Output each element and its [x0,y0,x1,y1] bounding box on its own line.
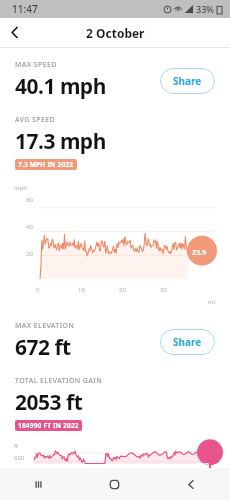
staticText: Share [173,335,202,349]
staticText: 11:47 [12,2,38,16]
button[interactable]: Back [153,468,230,500]
button[interactable]: Back [0,18,30,47]
staticText: 643 [197,461,210,468]
button[interactable]: Home [76,468,153,500]
staticText: TOTAL ELEVATION GAIN [15,376,103,386]
staticText: ft [14,442,19,450]
staticText: 2053 ft [15,388,83,417]
staticText: MAX ELEVATION [15,321,75,331]
staticText: 30 [160,286,167,294]
staticText: Share [173,74,202,88]
staticText: 60 [19,196,33,204]
staticText: mi [208,298,216,306]
staticText: 184990 FT IN 2022 [18,421,79,430]
staticText: 0 [36,286,40,294]
button[interactable]: Recent apps [0,468,76,500]
staticText: 10 [78,286,85,294]
staticText: 7.3 MPH IN 2022 [18,160,74,169]
button[interactable]: Share [160,68,215,94]
staticText: MAX SPEED [15,60,57,70]
staticText: mph [14,184,28,192]
staticText: 20 [19,250,33,258]
staticText: 33% [196,3,214,15]
staticText: 650 [14,454,25,462]
staticText: 672 ft [15,333,71,362]
staticText: AVG SPEED [15,115,56,125]
staticText: 2 October [86,25,145,41]
staticText: 40 [19,223,33,231]
staticText: 20 [119,286,126,294]
staticText: 23.9 [192,248,206,258]
staticText: 40.1 mph [15,72,106,101]
staticText: 17.3 mph [15,127,106,156]
button[interactable]: Share [160,329,215,355]
